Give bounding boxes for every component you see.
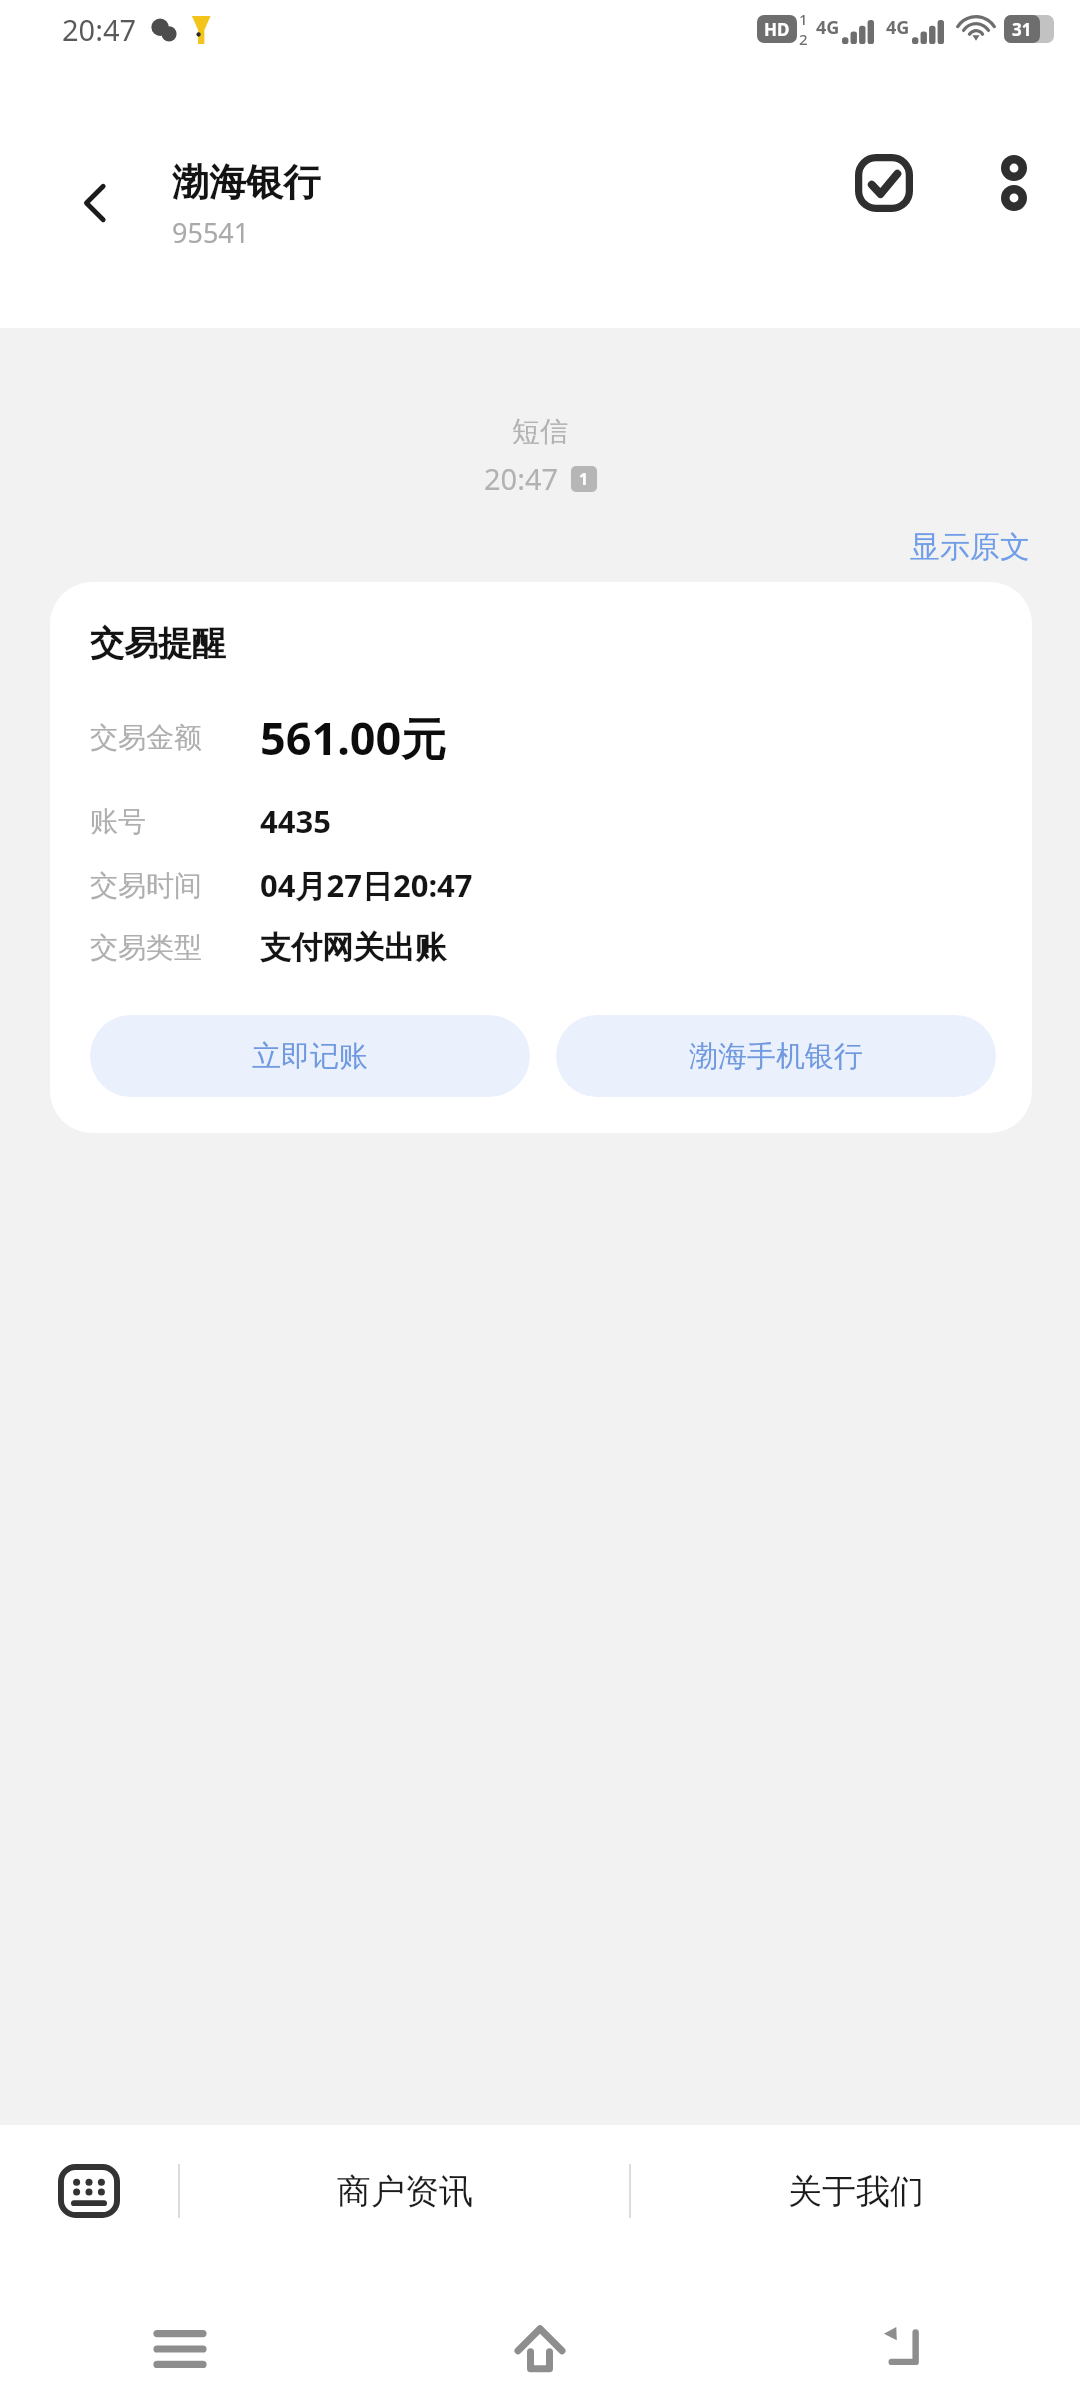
- button[interactable]: 交易提醒: [50, 582, 1032, 1133]
- staticText: 交易金额: [90, 720, 202, 755]
- staticText: 20:47: [484, 459, 559, 498]
- staticText: 交易类型: [90, 930, 202, 965]
- staticText: 关于我们: [788, 2170, 924, 2213]
- button[interactable]: 立即记账: [90, 1015, 530, 1097]
- staticText: 短信: [512, 414, 568, 449]
- staticText: 商户资讯: [337, 2170, 473, 2213]
- button[interactable]: More options: [966, 135, 1062, 231]
- staticText: 账号: [90, 804, 146, 839]
- staticText: 渤海银行: [172, 159, 320, 206]
- staticText: 显示原文: [910, 528, 1030, 566]
- button[interactable]: Select messages: [836, 135, 932, 231]
- button[interactable]: 商户资讯: [180, 2141, 629, 2241]
- button[interactable]: Recent apps: [0, 2290, 360, 2408]
- staticText: 4G: [816, 15, 840, 40]
- staticText: 立即记账: [252, 1038, 368, 1075]
- staticText: 4435: [260, 800, 331, 842]
- button[interactable]: Back: [58, 165, 134, 241]
- staticText: 04月27日20:47: [260, 864, 473, 906]
- staticText: 95541: [172, 214, 250, 251]
- button[interactable]: 渤海手机银行: [556, 1015, 996, 1097]
- staticText: 1: [579, 468, 589, 490]
- button[interactable]: Back: [720, 2290, 1080, 2408]
- staticText: 2: [799, 29, 808, 49]
- staticText: 31: [1012, 18, 1032, 41]
- staticText: HD: [764, 18, 790, 41]
- button[interactable]: Home: [360, 2290, 720, 2408]
- button[interactable]: Keyboard: [0, 2141, 178, 2241]
- staticText: 交易时间: [90, 868, 202, 903]
- staticText: 561.00元: [260, 707, 447, 768]
- button[interactable]: 显示原文: [902, 520, 1038, 574]
- button[interactable]: 关于我们: [631, 2141, 1080, 2241]
- staticText: 4G: [886, 15, 910, 40]
- staticText: 渤海手机银行: [689, 1038, 863, 1075]
- staticText: 1: [799, 9, 808, 29]
- staticText: 支付网关出账: [260, 928, 446, 967]
- staticText: 交易提醒: [90, 622, 226, 665]
- staticText: 20:47: [62, 10, 137, 49]
